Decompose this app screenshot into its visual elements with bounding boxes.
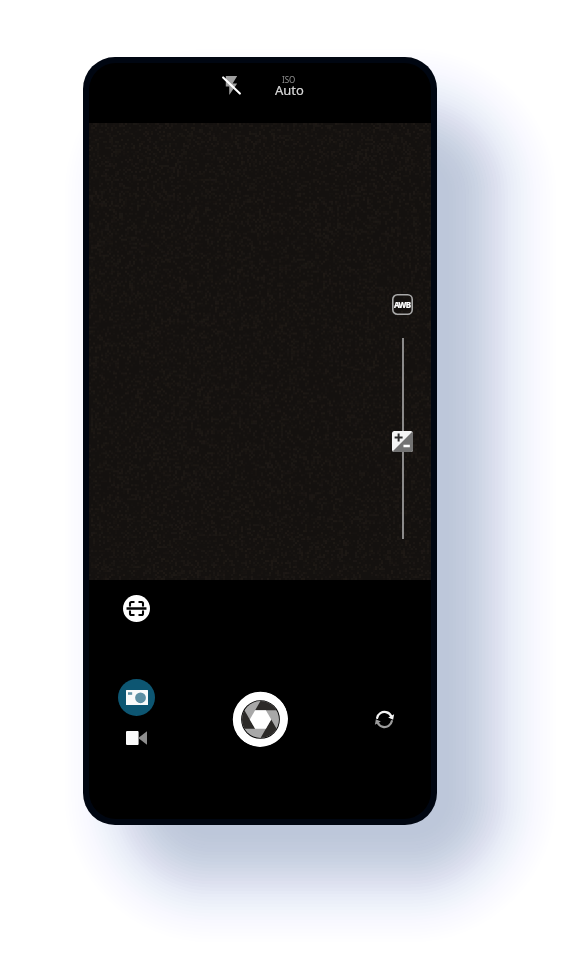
button[interactable]: Switch camera xyxy=(370,705,398,733)
button[interactable]: Photo mode xyxy=(118,679,155,716)
button[interactable]: Document scan xyxy=(123,595,150,622)
button[interactable]: Video mode xyxy=(122,724,150,752)
staticText: ISO xyxy=(282,74,296,85)
button[interactable]: Take photo xyxy=(232,691,288,747)
button[interactable]: ISO xyxy=(259,69,319,109)
button[interactable]: Flash off xyxy=(211,65,251,105)
button[interactable]: Exposure compensation xyxy=(392,431,413,452)
staticText: AWB xyxy=(394,299,411,310)
button[interactable]: Auto white balance xyxy=(392,294,413,315)
staticText: Auto xyxy=(275,81,304,99)
